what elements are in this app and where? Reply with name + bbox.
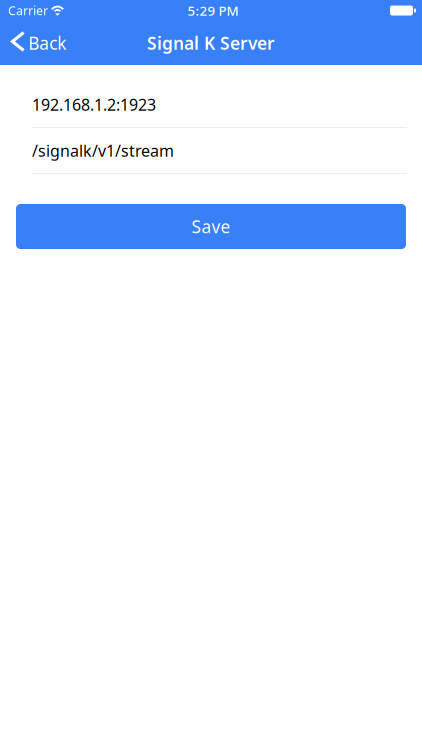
button[interactable]: Back (0, 21, 76, 65)
staticText: Save (191, 215, 230, 238)
staticText: 5:29 PM (187, 2, 238, 19)
button[interactable]: Save (16, 204, 406, 249)
staticText: Carrier (8, 2, 48, 18)
staticText: /signalk/v1/stream (32, 140, 174, 161)
button[interactable]: /signalk/v1/stream (0, 128, 422, 173)
staticText: 192.168.1.2:1923 (32, 94, 156, 115)
staticText: Back (28, 31, 66, 54)
button[interactable]: 192.168.1.2:1923 (0, 82, 422, 127)
staticText: Signal K Server (147, 31, 275, 54)
